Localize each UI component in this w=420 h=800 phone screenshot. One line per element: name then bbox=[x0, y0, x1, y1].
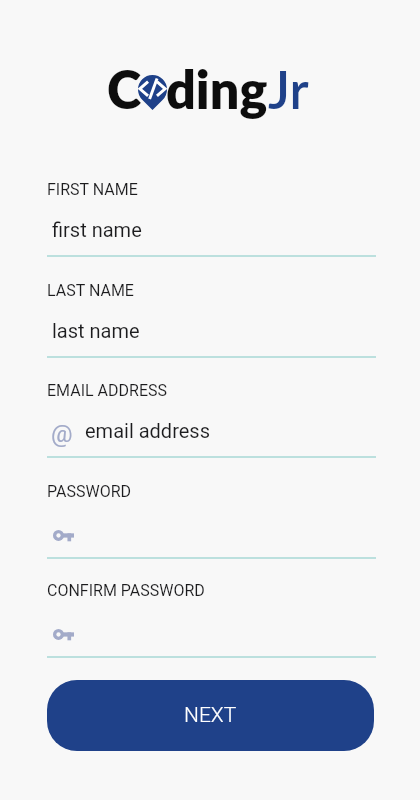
staticText: first name bbox=[52, 218, 142, 241]
staticText: EMAIL ADDRESS bbox=[47, 381, 167, 400]
staticText: Jr bbox=[268, 58, 309, 120]
button[interactable]: CONFIRM PASSWORD bbox=[0, 571, 420, 671]
staticText: PASSWORD bbox=[47, 482, 132, 501]
button[interactable]: LAST NAME bbox=[0, 271, 420, 371]
staticText: C bbox=[107, 58, 142, 120]
staticText: email address bbox=[85, 419, 210, 442]
button[interactable]: FIRST NAME bbox=[0, 170, 420, 270]
staticText: @ bbox=[51, 420, 73, 448]
button[interactable]: NEXT bbox=[47, 680, 374, 751]
staticText: LAST NAME bbox=[47, 281, 134, 300]
button[interactable]: EMAIL ADDRESS bbox=[0, 371, 420, 471]
staticText: last name bbox=[52, 319, 140, 342]
staticText: NEXT bbox=[184, 703, 237, 728]
button[interactable]: PASSWORD bbox=[0, 472, 420, 572]
staticText: ding bbox=[166, 58, 268, 120]
staticText: CONFIRM PASSWORD bbox=[47, 581, 205, 600]
staticText: FIRST NAME bbox=[47, 180, 138, 199]
